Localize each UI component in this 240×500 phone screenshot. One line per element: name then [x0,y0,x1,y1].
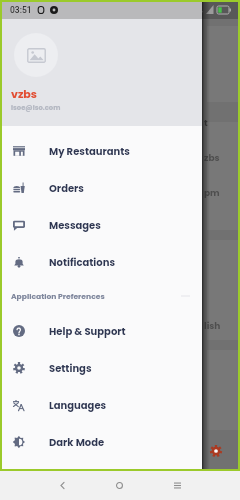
staticText: pm [204,187,220,200]
staticText: Dark Mode [49,435,105,449]
staticText: 03:51 [10,5,32,15]
button[interactable]: Dark Mode [0,423,202,460]
button[interactable]: Home [106,472,133,499]
staticText: lish [204,320,221,333]
staticText: zbs [204,152,220,165]
button[interactable]: Orders [0,169,202,206]
button[interactable]: My Restaurants [0,132,202,169]
staticText: vzbs [11,86,37,101]
button[interactable]: Help & Support [0,312,202,349]
button[interactable]: Settings [0,349,202,386]
staticText: isoe@iso.com [11,103,61,113]
staticText: Orders [49,181,84,195]
button[interactable]: Messages [0,206,202,243]
button[interactable]: Notifications [0,243,202,280]
staticText: Application Preferences [11,291,105,302]
staticText: t [204,117,208,130]
button[interactable]: Back [49,472,76,499]
staticText: Settings [49,361,92,375]
staticText: My Restaurants [49,144,130,158]
staticText: Languages [49,398,107,412]
button[interactable]: Recent apps [164,472,191,499]
staticText: Help & Support [49,324,126,338]
staticText: Notifications [49,255,115,269]
button[interactable]: Languages [0,386,202,423]
staticText: Messages [49,218,101,232]
